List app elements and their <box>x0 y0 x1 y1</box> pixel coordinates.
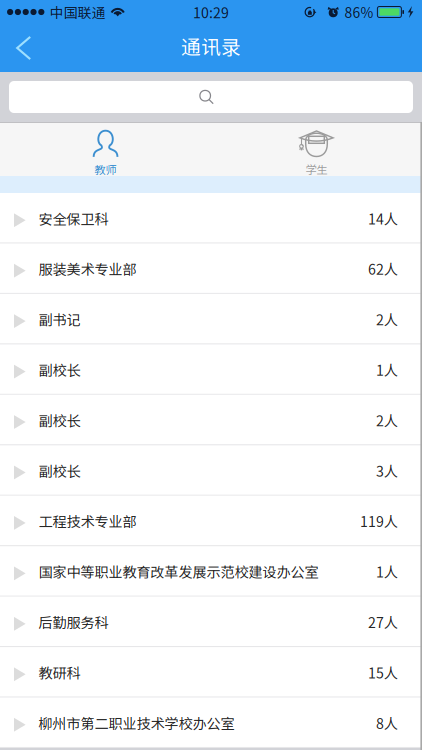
button[interactable]: 副校长 <box>0 395 422 445</box>
button[interactable]: 柳州市第二职业技术学校办公室 <box>0 697 422 748</box>
staticText: 副校长 <box>39 410 81 430</box>
staticText: 119人 <box>360 511 398 531</box>
button[interactable]: Search <box>0 81 422 113</box>
staticText: 学生 <box>305 161 327 177</box>
staticText: 副校长 <box>39 460 81 481</box>
staticText: 安全保卫科 <box>39 208 109 228</box>
staticText: 86% <box>344 2 373 22</box>
staticText: 15人 <box>368 662 398 682</box>
staticText: 27人 <box>368 612 398 632</box>
staticText: 工程技术专业部 <box>39 511 137 531</box>
button[interactable]: 教师 <box>0 122 211 176</box>
button[interactable]: 教研科 <box>0 647 422 697</box>
staticText: 1人 <box>376 561 398 582</box>
staticText: 1人 <box>376 359 398 380</box>
button[interactable]: Back <box>6 26 42 70</box>
staticText: 国家中等职业教育改革发展示范校建设办公室 <box>39 561 319 582</box>
button[interactable]: 国家中等职业教育改革发展示范校建设办公室 <box>0 546 422 597</box>
staticText: 3人 <box>376 460 398 481</box>
button[interactable]: 后勤服务科 <box>0 597 422 647</box>
staticText: 中国联通 <box>49 2 105 22</box>
staticText: 14人 <box>368 208 398 228</box>
staticText: 副校长 <box>39 359 81 380</box>
staticText: 教师 <box>94 161 116 177</box>
staticText: 服装美术专业部 <box>39 258 137 279</box>
staticText: 8人 <box>376 712 398 733</box>
button[interactable]: 学生 <box>211 122 422 176</box>
button[interactable]: 安全保卫科 <box>0 193 422 243</box>
staticText: 通讯录 <box>181 32 241 60</box>
staticText: 2人 <box>376 309 398 329</box>
staticText: 后勤服务科 <box>39 612 109 632</box>
button[interactable]: 副书记 <box>0 294 422 344</box>
staticText: 10:29 <box>193 2 229 22</box>
button[interactable]: 副校长 <box>0 344 422 395</box>
staticText: 教研科 <box>39 662 81 682</box>
staticText: 柳州市第二职业技术学校办公室 <box>39 712 235 733</box>
button[interactable]: 服装美术专业部 <box>0 243 422 294</box>
button[interactable]: 副校长 <box>0 445 422 496</box>
staticText: 62人 <box>368 258 398 279</box>
button[interactable]: 工程技术专业部 <box>0 496 422 546</box>
staticText: 副书记 <box>39 309 81 329</box>
staticText: 2人 <box>376 410 398 430</box>
